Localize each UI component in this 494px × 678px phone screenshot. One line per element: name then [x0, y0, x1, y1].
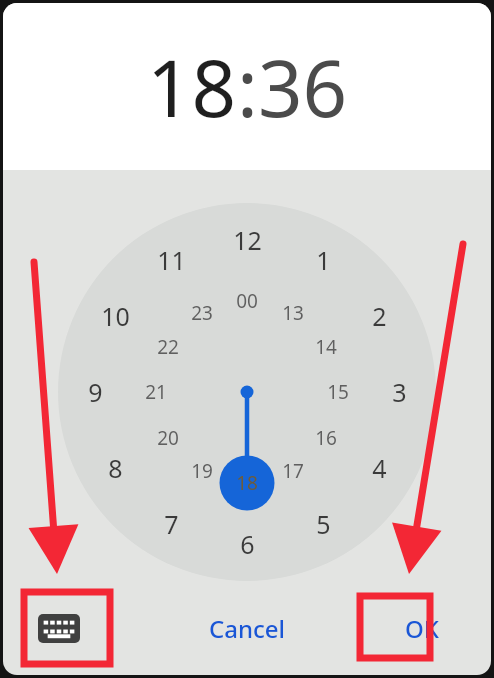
staticText: 7 [164, 507, 179, 541]
staticText: 00 [236, 288, 258, 314]
staticText: 36 [258, 34, 348, 140]
staticText: 14 [315, 334, 337, 360]
button[interactable]: 14 [303, 333, 349, 361]
button[interactable]: 20 [145, 424, 191, 452]
staticText: 18 [147, 34, 237, 140]
staticText: 9 [88, 375, 103, 409]
staticText: 6 [240, 527, 255, 561]
staticText: 15 [327, 379, 349, 405]
button[interactable]: OK [395, 604, 449, 653]
staticText: 5 [316, 507, 331, 541]
button[interactable]: 10 [88, 299, 142, 333]
button[interactable]: 6 [220, 527, 274, 561]
button[interactable]: 18 [147, 34, 237, 140]
button[interactable]: 22 [145, 333, 191, 361]
button[interactable]: 8 [88, 451, 142, 485]
staticText: 13 [282, 300, 304, 326]
button[interactable]: 5 [296, 507, 350, 541]
staticText: 10 [101, 299, 130, 333]
button[interactable]: 16 [303, 424, 349, 452]
button[interactable]: 21 [133, 378, 179, 406]
staticText: 21 [145, 379, 167, 405]
button[interactable]: 18 [224, 469, 270, 497]
button[interactable]: 1 [296, 243, 350, 277]
staticText: 2 [372, 299, 387, 333]
button[interactable]: 9 [68, 375, 122, 409]
staticText: 4 [372, 451, 387, 485]
staticText: : [237, 34, 258, 140]
button[interactable]: 3 [372, 375, 426, 409]
staticText: 12 [233, 223, 262, 257]
button[interactable]: 7 [144, 507, 198, 541]
staticText: Cancel [209, 612, 286, 645]
button[interactable]: Cancel [197, 604, 298, 653]
staticText: 8 [108, 451, 123, 485]
button[interactable]: 11 [144, 243, 198, 277]
button[interactable]: 19 [179, 457, 225, 485]
staticText: 16 [315, 425, 337, 451]
staticText: OK [405, 612, 439, 645]
staticText: 11 [157, 243, 186, 277]
button[interactable] [3, 170, 491, 581]
staticText: 19 [191, 458, 213, 484]
button[interactable]: 23 [179, 299, 225, 327]
button[interactable]: 00 [224, 287, 270, 315]
staticText: 22 [157, 334, 179, 360]
button[interactable]: 4 [352, 451, 406, 485]
button[interactable]: 12 [220, 223, 274, 257]
staticText: 23 [191, 300, 213, 326]
staticText: 17 [282, 458, 304, 484]
staticText: 1 [316, 243, 331, 277]
button[interactable]: 2 [352, 299, 406, 333]
button[interactable]: 15 [315, 378, 361, 406]
button[interactable]: 13 [270, 299, 316, 327]
staticText: 20 [157, 425, 179, 451]
staticText: 3 [392, 375, 407, 409]
button[interactable]: 17 [270, 457, 316, 485]
staticText: 18 [236, 470, 258, 496]
button[interactable]: 36 [258, 34, 348, 140]
button[interactable]: Switch to text input mode [31, 600, 87, 656]
